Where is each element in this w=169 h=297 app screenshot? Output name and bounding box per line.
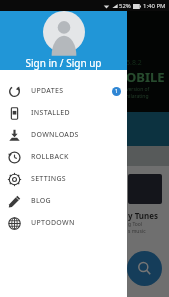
button[interactable]: ROLLBACK (0, 146, 127, 168)
staticText: 1:40 PM (143, 2, 166, 10)
button[interactable]: UPDATES (0, 80, 127, 102)
staticText: s music (128, 228, 146, 235)
staticText: hilarating (126, 93, 149, 100)
button[interactable]: Search (127, 251, 162, 286)
button[interactable]: Sign in / Sign up (0, 0, 127, 70)
staticText: 1 (115, 88, 118, 95)
button[interactable]: DOWNLOADS (0, 124, 127, 146)
staticText: OBILE (126, 68, 165, 86)
staticText: 5.8.2 (126, 58, 142, 68)
staticText: g Tool (128, 221, 143, 228)
staticText: INSTALLED (31, 108, 70, 118)
staticText: UPDATES (31, 86, 64, 96)
button[interactable]: UPTODOWN (0, 212, 127, 234)
button[interactable]: BLOG (0, 190, 127, 212)
button[interactable]: SETTINGS (0, 168, 127, 190)
staticText: Sign in / Sign up (25, 56, 102, 70)
staticText: SETTINGS (31, 174, 67, 184)
staticText: version of (126, 86, 150, 93)
staticText: 52% (119, 2, 131, 10)
staticText: ROLLBACK (31, 152, 69, 162)
staticText: DOWNLOADS (31, 130, 79, 140)
staticText: BLOG (31, 196, 51, 206)
staticText: UPTODOWN (31, 218, 75, 228)
button[interactable]: INSTALLED (0, 102, 127, 124)
staticText: y Tunes (128, 210, 159, 221)
